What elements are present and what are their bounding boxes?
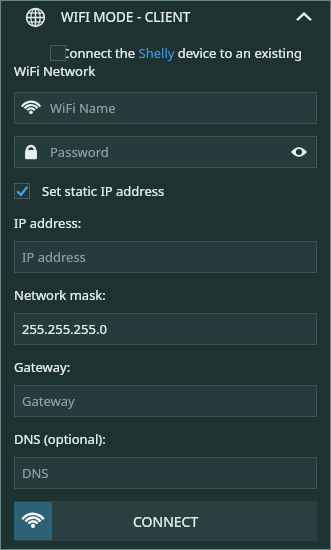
staticText: IP address: [14,214,82,232]
button[interactable]: 255.255.255.0 [14,313,317,345]
button[interactable]: Password [14,136,317,168]
button[interactable]: Gateway [14,385,317,417]
button[interactable]: IP address [14,241,317,273]
staticText: CONNECT [133,512,199,531]
staticText: Network mask: [14,286,106,304]
other: Collapse [295,8,313,26]
staticText: Connect the Shelly device to an existing… [14,44,319,80]
button[interactable]: WiFi Name [14,92,317,124]
staticText: Gateway: [14,358,71,376]
staticText: Set static IP address [42,182,165,200]
staticText: WiFi Name [50,99,309,117]
staticText: Gateway [22,392,309,410]
button[interactable]: CONNECT [14,501,317,541]
button[interactable]: Network [0,0,331,34]
button[interactable]: Show password [289,142,309,162]
staticText: WIFI MODE - CLIENT [61,8,295,26]
button[interactable]: Connect the Shelly device to an existing… [50,45,66,61]
staticText: DNS (optional): [14,430,106,448]
staticText: Password [50,143,289,161]
staticText: 255.255.255.0 [22,320,309,338]
button[interactable]: Set static IP address [14,182,317,200]
other: Network [26,8,45,27]
staticText: DNS [22,464,309,482]
button[interactable]: DNS [14,457,317,489]
staticText: IP address [22,248,309,266]
